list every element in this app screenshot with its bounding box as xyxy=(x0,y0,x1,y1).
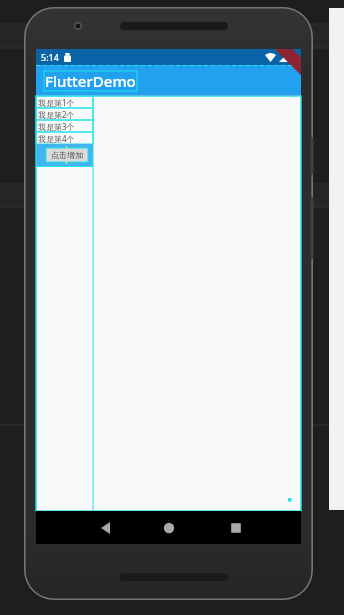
staticText: 我是第2个 xyxy=(38,109,75,120)
staticText: 我是第1个 xyxy=(38,97,75,108)
staticText: 我是第4个 xyxy=(38,133,75,144)
staticText: 我是第3个 xyxy=(38,121,75,132)
button[interactable]: Recent apps xyxy=(221,513,251,543)
staticText: FlutterDemo xyxy=(45,71,136,91)
button[interactable]: 我是第3个 xyxy=(36,120,93,132)
button[interactable]: 我是第2个 xyxy=(36,108,93,120)
button[interactable]: 我是第1个 xyxy=(36,96,93,108)
other: Navigation bar xyxy=(36,511,301,544)
button[interactable]: Home xyxy=(154,513,184,543)
staticText: 点击增加 xyxy=(51,150,83,160)
staticText: 5:14 xyxy=(41,51,59,63)
button[interactable]: 我是第4个 xyxy=(36,132,93,144)
button[interactable]: Back xyxy=(91,513,121,543)
button[interactable]: FlutterDemo xyxy=(44,71,137,91)
button[interactable]: 点击增加 xyxy=(36,144,93,166)
